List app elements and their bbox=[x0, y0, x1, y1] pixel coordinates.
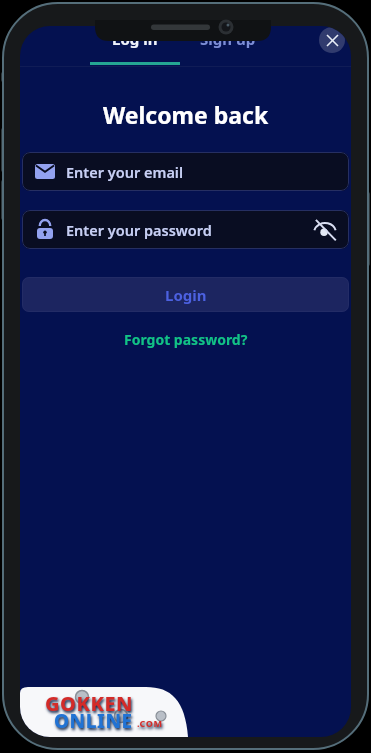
staticText: Welcome back bbox=[103, 99, 269, 130]
staticText: ONLINE bbox=[54, 708, 133, 734]
staticText: GOKKEN bbox=[45, 690, 134, 717]
button[interactable]: Log in bbox=[75, 29, 195, 49]
staticText: Forgot password? bbox=[124, 330, 248, 349]
button[interactable] bbox=[313, 219, 337, 241]
staticText: Log in bbox=[112, 29, 158, 49]
staticText: Enter your email bbox=[66, 162, 184, 182]
staticText: Enter your password bbox=[66, 220, 212, 240]
staticText: .COM bbox=[137, 717, 163, 729]
button[interactable]: Login bbox=[22, 277, 349, 312]
staticText: Sign up bbox=[200, 29, 256, 49]
button[interactable]: Forgot password? bbox=[20, 330, 351, 349]
button[interactable]: Enter your email bbox=[22, 152, 349, 191]
button[interactable] bbox=[319, 27, 345, 53]
button[interactable]: Sign up bbox=[168, 29, 288, 49]
staticText: Login bbox=[165, 285, 207, 305]
button[interactable]: Enter your password bbox=[22, 210, 349, 249]
